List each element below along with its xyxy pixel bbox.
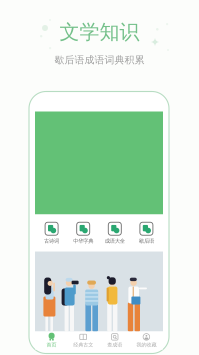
staticText: 首页 <box>47 342 57 348</box>
staticText: 我的收藏 <box>136 342 156 348</box>
button[interactable]: 我的收藏 <box>131 332 162 349</box>
staticText: 歇后语成语词典积累 <box>54 54 144 66</box>
button[interactable]: 成语大全 <box>99 222 131 244</box>
button[interactable]: 歇后语 <box>131 222 162 244</box>
staticText: 成语大全 <box>105 238 125 244</box>
button[interactable]: 古诗词 <box>36 222 67 244</box>
staticText: 歇后语 <box>139 238 154 244</box>
button[interactable]: 中华字典 <box>67 222 99 244</box>
button[interactable]: 查成语 <box>99 332 131 349</box>
button[interactable]: 首页 <box>36 332 67 349</box>
staticText: 古诗词 <box>44 238 59 244</box>
staticText: 查成语 <box>107 342 122 348</box>
button[interactable]: 经典古文 <box>67 332 99 349</box>
staticText: 经典古文 <box>73 342 93 348</box>
staticText: 文学知识 <box>59 20 139 44</box>
staticText: 中华字典 <box>73 238 93 244</box>
